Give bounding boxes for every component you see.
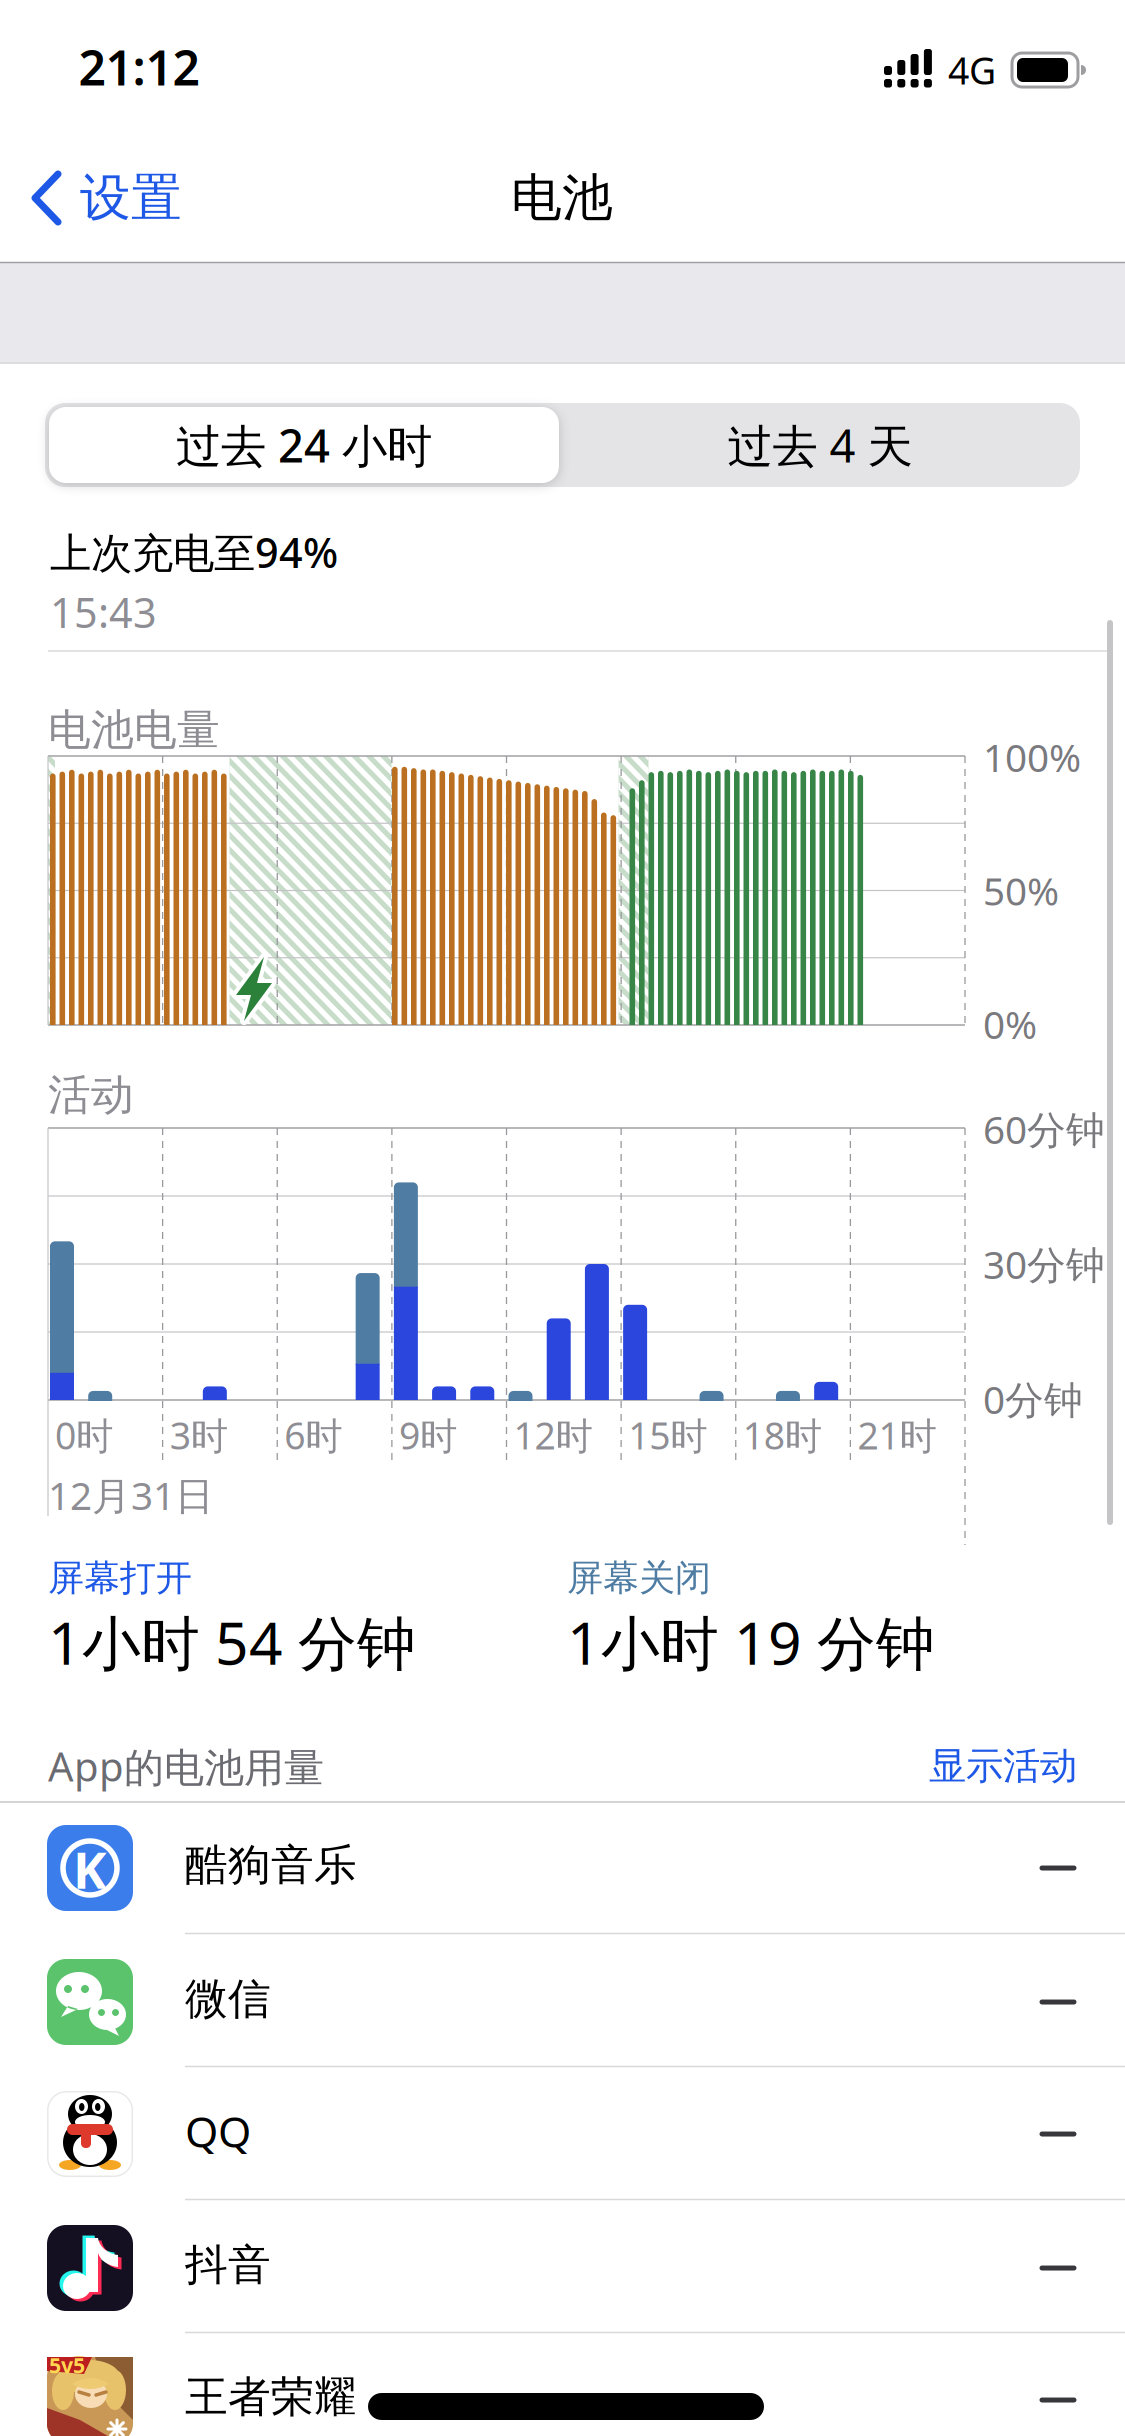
staticText: K [73, 1835, 107, 1903]
staticText: 0分钟 [983, 1373, 1083, 1425]
staticText: 过去 24 小时 [176, 415, 432, 475]
staticText: 60分钟 [983, 1103, 1105, 1155]
staticText: 屏幕打开 [48, 1556, 192, 1600]
staticText: 设置 [80, 167, 182, 229]
staticText: 50% [983, 865, 1059, 916]
staticText: 上次充电至94% [50, 525, 338, 579]
staticText: 王者荣耀 [185, 2371, 357, 2423]
staticText: 100% [983, 731, 1081, 783]
staticText: 抖音 [185, 2239, 271, 2291]
staticText: 屏幕关闭 [567, 1556, 711, 1600]
staticText: 15:43 [50, 585, 157, 639]
staticText: 电池电量 [48, 704, 220, 756]
staticText: 0% [983, 998, 1037, 1050]
staticText: 18时 [743, 1410, 822, 1460]
staticText: 21时 [857, 1410, 936, 1460]
staticText: 电池 [511, 167, 613, 229]
staticText: 9时 [399, 1410, 457, 1460]
staticText: 6时 [284, 1410, 342, 1460]
staticText: 4G [948, 45, 996, 95]
staticText: 12月31日 [48, 1469, 214, 1521]
staticText: 12时 [513, 1410, 592, 1460]
staticText: 活动 [48, 1069, 134, 1121]
staticText: 酷狗音乐 [185, 1839, 357, 1891]
staticText: App的电池用量 [48, 1739, 324, 1793]
staticText: 21:12 [78, 35, 199, 99]
staticText: 5v5 [49, 2351, 85, 2379]
staticText: 1小时 54 分钟 [48, 1603, 416, 1681]
staticText: 过去 4 天 [727, 415, 912, 475]
staticText: 3时 [170, 1410, 228, 1460]
staticText: 微信 [185, 1973, 271, 2025]
staticText: 0时 [55, 1410, 113, 1460]
staticText: QQ [185, 2103, 251, 2159]
staticText: 显示活动 [929, 1743, 1077, 1789]
staticText: 30分钟 [983, 1238, 1105, 1290]
staticText: 1小时 19 分钟 [567, 1603, 935, 1681]
staticText: 15时 [628, 1410, 707, 1460]
